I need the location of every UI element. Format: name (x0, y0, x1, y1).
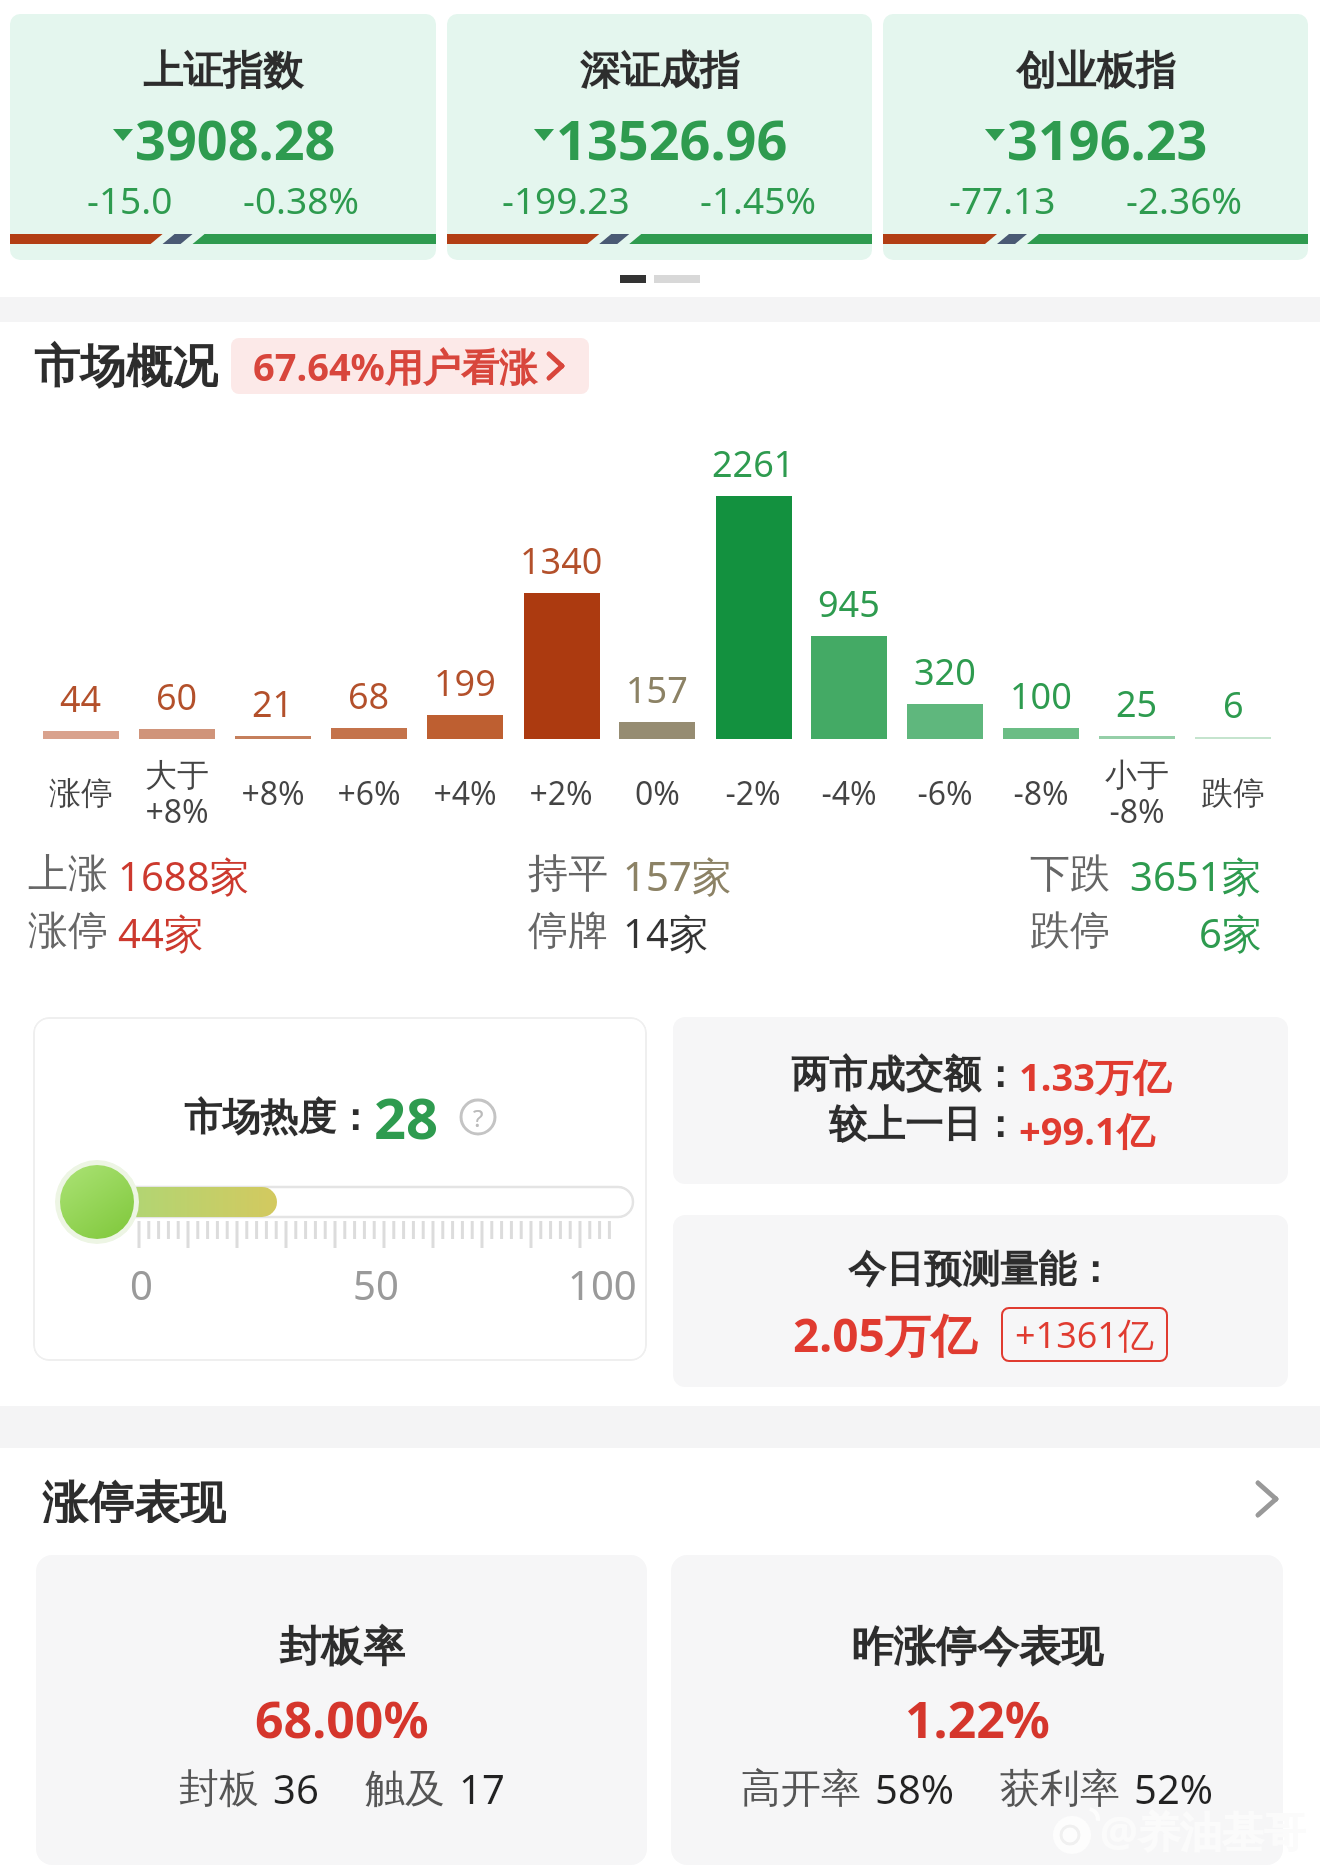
staticText: 深证成指 (580, 45, 740, 95)
staticText: 持平 (528, 848, 608, 898)
staticText: +6% (337, 771, 401, 815)
staticText: 44 (60, 674, 102, 723)
staticText: 下跌 (1030, 848, 1110, 898)
staticText: 封板率 (279, 1621, 405, 1674)
staticText: -0.38% (243, 174, 360, 222)
staticText: 停牌 (528, 905, 608, 955)
staticText: 50 (353, 1257, 399, 1311)
staticText: 大于 +8% (145, 755, 209, 831)
staticText: +1361亿 (1015, 1310, 1154, 1359)
staticText: 100 (568, 1257, 637, 1311)
button[interactable]: 封板率 (36, 1555, 647, 1865)
staticText: +4% (433, 771, 497, 815)
staticText: 创业板指 (1016, 45, 1176, 95)
staticText: 320 (914, 647, 976, 696)
staticText: -15.0 (87, 174, 173, 222)
staticText: +99.1亿 (1019, 1104, 1155, 1156)
staticText: 市场热度： (184, 1093, 374, 1141)
staticText: 44家 (118, 905, 204, 960)
staticText: 上涨 (28, 848, 108, 898)
staticText: 两市成交额： (791, 1050, 1019, 1098)
staticText: 涨停表现 (42, 1475, 226, 1523)
button[interactable] (1254, 1477, 1280, 1521)
staticText: 市场概况 (34, 338, 218, 394)
staticText: -199.23 (502, 174, 630, 222)
staticText: 小于 -8% (1105, 755, 1169, 831)
staticText: 945 (818, 579, 880, 628)
staticText: 36 (273, 1761, 319, 1815)
staticText: 1.33万亿 (1019, 1050, 1171, 1102)
staticText: 199 (434, 658, 496, 707)
staticText: 0% (635, 771, 680, 815)
staticText: 1340 (520, 536, 603, 585)
staticText: @养油基哥 (1100, 1802, 1306, 1859)
staticText: 17 (459, 1761, 505, 1815)
button[interactable]: 67.64%用户看涨 (231, 338, 589, 394)
staticText: -77.13 (949, 174, 1056, 222)
staticText: 3196.23 (1007, 102, 1208, 168)
staticText: 68 (348, 671, 390, 720)
staticText: 封板 (179, 1763, 259, 1813)
staticText: 157 (626, 665, 688, 714)
staticText: 14家 (623, 905, 709, 960)
staticText: 0 (130, 1257, 153, 1311)
staticText: -8% (1013, 771, 1069, 815)
staticText: 13526.96 (556, 102, 788, 168)
staticText: 3651家 (1130, 848, 1262, 903)
staticText: 2261 (712, 439, 795, 488)
staticText: 6家 (1199, 905, 1262, 960)
staticText: 52% (1134, 1761, 1213, 1815)
button[interactable]: 市场热度： (33, 1017, 647, 1361)
staticText: 60 (156, 672, 198, 721)
staticText: 涨停 (28, 905, 108, 955)
button[interactable]: 昨涨停今表现 (671, 1555, 1283, 1865)
staticText: +8% (241, 771, 305, 815)
staticText: 跌停 (1030, 905, 1110, 955)
staticText: 1688家 (118, 848, 250, 903)
staticText: 1.22% (905, 1685, 1050, 1749)
staticText: 获利率 (1000, 1763, 1120, 1813)
staticText: 157家 (623, 848, 732, 903)
staticText: ? (473, 1101, 484, 1134)
staticText: 涨停 (49, 773, 113, 813)
staticText: 昨涨停今表现 (851, 1621, 1103, 1674)
staticText: 6 (1223, 680, 1244, 729)
staticText: 较上一日： (829, 1100, 1019, 1148)
button[interactable]: 两市成交额： (673, 1017, 1288, 1184)
staticText: 68.00% (255, 1685, 429, 1749)
staticText: 58% (875, 1761, 954, 1815)
staticText: 3908.28 (135, 102, 336, 168)
staticText: -4% (821, 771, 877, 815)
staticText: +2% (529, 771, 593, 815)
staticText: 触及 (365, 1763, 445, 1813)
button[interactable]: 上证指数 (10, 14, 436, 260)
staticText: -2% (725, 771, 781, 815)
staticText: -1.45% (700, 174, 817, 222)
button[interactable]: 创业板指 (883, 14, 1308, 260)
staticText: 高开率 (741, 1763, 861, 1813)
staticText: -2.36% (1126, 174, 1243, 222)
button[interactable]: 深证成指 (447, 14, 872, 260)
staticText: 跌停 (1201, 773, 1265, 813)
staticText: 今日预测量能： (848, 1245, 1114, 1293)
staticText: 上证指数 (143, 45, 303, 95)
staticText: 25 (1116, 679, 1158, 728)
button[interactable]: 今日预测量能： (673, 1215, 1288, 1387)
staticText: 67.64%用户看涨 (253, 340, 537, 392)
staticText: 2.05万亿 (793, 1303, 977, 1366)
staticText: 100 (1010, 671, 1072, 720)
staticText: -6% (917, 771, 973, 815)
staticText: 21 (252, 679, 294, 728)
staticText: 28 (374, 1079, 439, 1155)
